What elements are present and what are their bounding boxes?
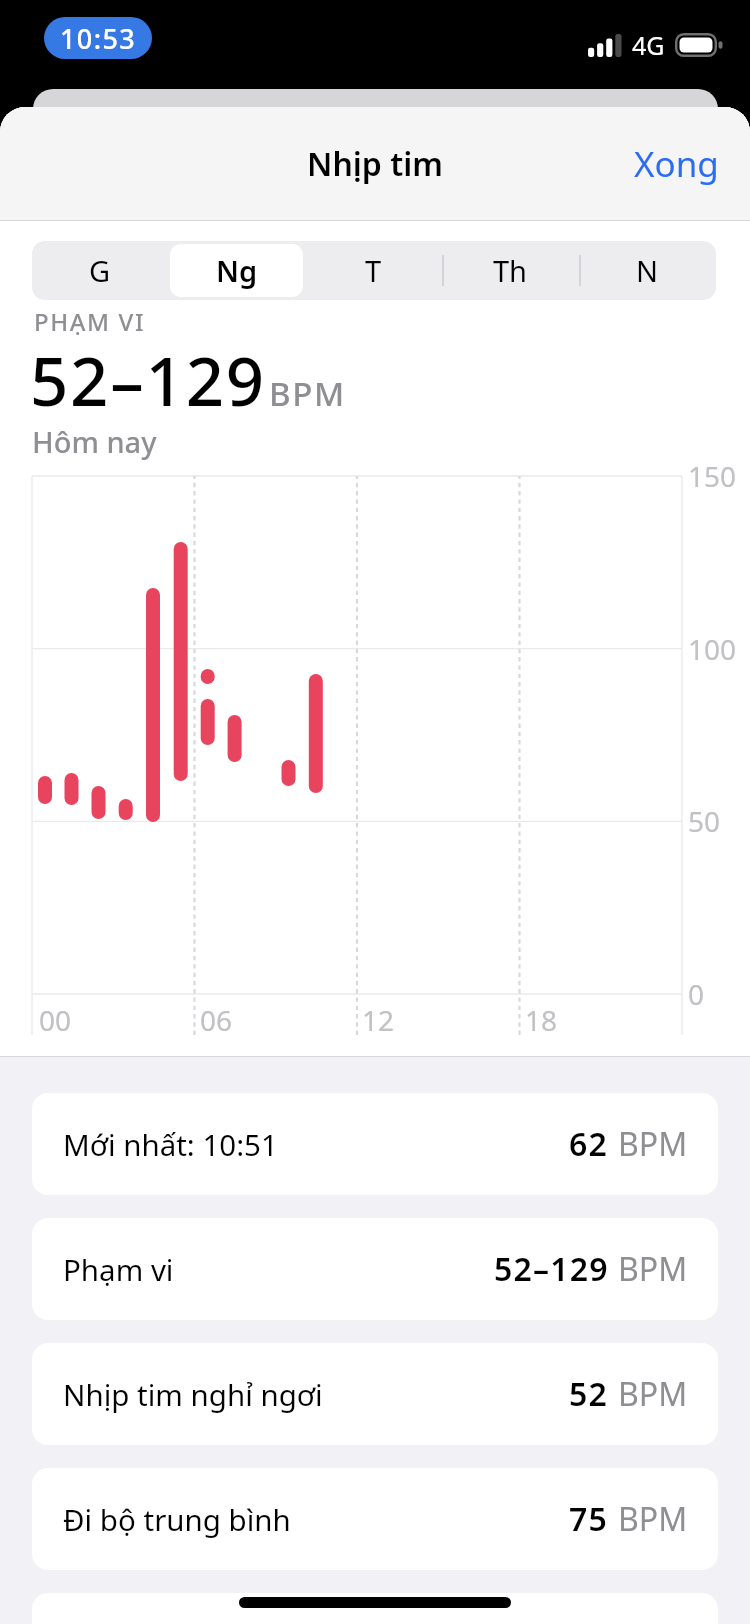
other: Cellular signal — [588, 34, 621, 57]
staticText: 100 — [688, 630, 737, 668]
staticText: 150 — [688, 457, 737, 495]
staticText: 50 — [688, 802, 721, 840]
staticText: Mới nhất: 10:51 — [63, 1124, 278, 1164]
other: Battery — [675, 33, 723, 57]
staticText: 18 — [525, 1001, 558, 1039]
staticText: 52 — [569, 1372, 609, 1416]
button[interactable]: Xong — [603, 118, 750, 210]
button[interactable]: Ng — [168, 241, 305, 300]
button[interactable]: Th — [442, 241, 579, 300]
staticText: BPM — [618, 1372, 688, 1416]
staticText: T — [365, 251, 382, 290]
staticText: BPM — [269, 371, 347, 416]
button[interactable]: Đi bộ trung bình — [32, 1468, 718, 1570]
staticText: 00 — [39, 1001, 72, 1039]
staticText: BPM — [618, 1247, 688, 1291]
button[interactable]: T — [305, 241, 442, 300]
staticText: N — [636, 251, 659, 290]
staticText: Nhịp tim nghỉ ngơi — [63, 1374, 323, 1414]
staticText: Nhịp tim — [307, 142, 443, 186]
staticText: G — [89, 251, 111, 290]
staticText: BPM — [618, 1122, 688, 1166]
staticText: 06 — [200, 1001, 233, 1039]
button[interactable] — [32, 1593, 718, 1624]
staticText: 75 — [569, 1497, 609, 1541]
staticText: Đi bộ trung bình — [63, 1499, 291, 1539]
button[interactable]: G — [32, 241, 168, 300]
staticText: Xong — [634, 140, 719, 188]
staticText: BPM — [618, 1497, 688, 1541]
staticText: Phạm vi — [63, 1249, 174, 1289]
staticText: 62 — [569, 1122, 609, 1166]
button[interactable]: N — [579, 241, 716, 300]
staticText: 10:53 — [60, 20, 137, 57]
staticText: 52–129 — [30, 334, 266, 425]
staticText: PHẠM VI — [34, 305, 146, 338]
staticText: Th — [493, 251, 528, 290]
staticText: 0 — [688, 975, 705, 1013]
staticText: 12 — [362, 1001, 395, 1039]
button[interactable]: Phạm vi — [32, 1218, 718, 1320]
staticText: Ng — [216, 251, 258, 290]
button[interactable]: Nhịp tim nghỉ ngơi — [32, 1343, 718, 1445]
staticText: 4G — [632, 28, 665, 62]
button[interactable]: Mới nhất: 10:51 — [32, 1093, 718, 1195]
staticText: 52–129 — [494, 1247, 609, 1291]
staticText: Hôm nay — [32, 422, 157, 461]
